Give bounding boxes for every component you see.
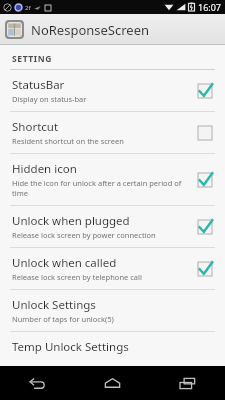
button[interactable]: Checked (195, 217, 215, 237)
button[interactable]: Unchecked (195, 123, 215, 143)
staticText: Release lock screen by power connection (12, 230, 156, 240)
staticText: Number of taps for unlock(5) (12, 314, 114, 324)
staticText: Unlock when plugged (12, 213, 130, 229)
button[interactable]: Unlock when called (0, 248, 225, 289)
staticText: Unlock when called (12, 255, 117, 271)
staticText: Unlock Settings (12, 297, 96, 313)
staticText: 2f (25, 4, 31, 12)
staticText: Temp Unlock Settings (12, 339, 129, 355)
button[interactable]: Back (0, 366, 75, 400)
staticText: 16:07 (198, 1, 222, 13)
staticText: Display on status-bar (12, 94, 87, 104)
staticText: Resident shortcut on the screen (12, 136, 124, 146)
staticText: StatusBar (12, 77, 65, 93)
button[interactable]: Unlock when plugged (0, 206, 225, 247)
button[interactable]: Shortcut (0, 112, 225, 153)
staticText: SETTING (12, 53, 52, 65)
button[interactable]: StatusBar (0, 70, 225, 111)
button[interactable]: Checked (195, 81, 215, 101)
staticText: Hide the icon for unlock after a certain… (12, 178, 189, 198)
button[interactable]: Checked (195, 170, 215, 190)
button[interactable]: Checked (195, 259, 215, 279)
staticText: Shortcut (12, 119, 59, 135)
staticText: NoResponseScreen (31, 21, 150, 39)
button[interactable]: Hidden icon (0, 154, 225, 205)
button[interactable]: Unlock Settings (0, 290, 225, 331)
button[interactable]: Temp Unlock Settings (0, 332, 225, 366)
button[interactable]: Recent apps (150, 366, 225, 400)
staticText: Release lock screen by telephone call (12, 272, 142, 282)
button[interactable]: Home (75, 366, 150, 400)
staticText: Hidden icon (12, 161, 77, 177)
